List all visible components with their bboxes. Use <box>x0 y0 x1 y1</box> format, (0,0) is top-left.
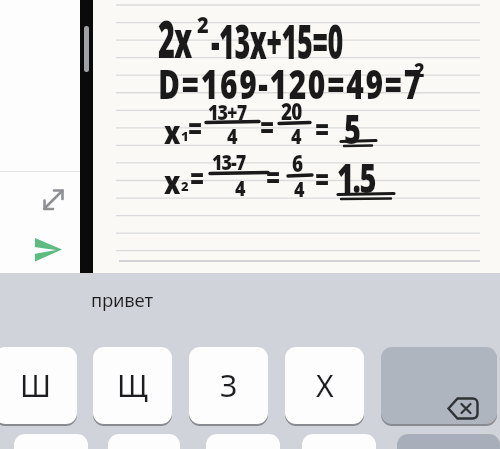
staticText: 4 <box>227 122 237 151</box>
button[interactable] <box>32 234 65 264</box>
staticText: 13-7 <box>212 147 246 177</box>
staticText: = <box>266 155 280 196</box>
staticText: = <box>188 106 202 147</box>
staticText: = <box>315 157 329 198</box>
staticText: x <box>164 159 180 203</box>
staticText: 4 <box>294 175 304 204</box>
staticText: 1.5 <box>337 150 375 205</box>
staticText: З <box>220 365 238 406</box>
staticText: 6 <box>292 148 303 179</box>
staticText: 2 <box>414 56 424 83</box>
staticText: 2 <box>197 9 208 40</box>
button[interactable] <box>397 434 500 449</box>
button[interactable] <box>206 434 280 449</box>
staticText: = <box>260 105 274 146</box>
staticText: = <box>315 107 329 148</box>
staticText: 4 <box>235 174 245 203</box>
button[interactable]: З <box>189 347 268 424</box>
button[interactable] <box>302 434 376 449</box>
staticText: = <box>190 156 204 197</box>
staticText: D=169-120=49=7 <box>158 55 423 111</box>
staticText: 4 <box>291 122 301 151</box>
button[interactable] <box>108 434 180 449</box>
staticText: x <box>164 109 180 153</box>
button[interactable] <box>14 434 88 449</box>
button[interactable]: Х <box>285 347 364 424</box>
button[interactable]: Щ <box>93 347 172 424</box>
button[interactable] <box>381 347 497 424</box>
staticText: 1 <box>181 127 188 145</box>
staticText: 2x <box>158 4 192 72</box>
staticText: 13+7 <box>208 97 247 127</box>
staticText: Х <box>316 365 334 406</box>
staticText: 20 <box>281 96 302 127</box>
staticText: -13x+15=0 <box>211 8 343 73</box>
button[interactable]: привет <box>91 287 153 312</box>
staticText: Ш <box>20 365 52 406</box>
button[interactable] <box>40 186 68 214</box>
button[interactable]: Ш <box>0 347 77 424</box>
staticText: Щ <box>117 365 148 406</box>
staticText: 5 <box>344 101 360 156</box>
staticText: 2 <box>181 177 188 195</box>
